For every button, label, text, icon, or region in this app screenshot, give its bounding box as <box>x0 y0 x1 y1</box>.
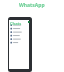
button[interactable] <box>9 43 29 47</box>
button[interactable] <box>9 27 29 31</box>
staticText: WhatsApp <box>19 2 45 9</box>
button[interactable] <box>9 23 29 27</box>
staticText: Chats <box>10 21 22 26</box>
button[interactable] <box>9 31 29 35</box>
button[interactable] <box>9 39 29 43</box>
button[interactable] <box>9 35 29 39</box>
